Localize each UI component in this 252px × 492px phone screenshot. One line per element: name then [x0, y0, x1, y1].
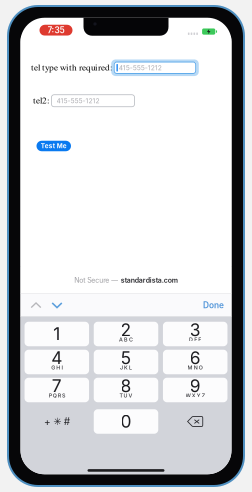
button[interactable]: Next field — [46, 294, 67, 317]
staticText: 7:35 — [47, 25, 64, 35]
button[interactable]: Delete — [163, 409, 227, 434]
staticText: GHI — [51, 364, 62, 371]
staticText: 7 — [52, 375, 62, 396]
staticText: 8 — [120, 375, 131, 396]
staticText: TUV — [119, 392, 133, 399]
staticText: ABC — [119, 336, 133, 343]
staticText: standardista.com — [121, 276, 178, 284]
button[interactable]: Plus, star, pound — [24, 409, 89, 434]
button[interactable]: 4 — [24, 350, 89, 374]
staticText: 5 — [120, 347, 131, 368]
staticText: 415-555-1212 — [56, 97, 99, 105]
button[interactable]: 2 — [94, 322, 158, 346]
staticText: Done — [203, 300, 224, 310]
staticText: 4 — [51, 347, 62, 368]
staticText: tel type with required: — [31, 63, 112, 72]
staticText: Test Me — [41, 142, 67, 150]
button[interactable]: 5 — [94, 350, 158, 374]
button[interactable]: 7 — [24, 378, 89, 402]
staticText: 415-555-1212 — [119, 64, 162, 72]
staticText: 0 — [120, 411, 131, 432]
button[interactable]: 9 — [163, 378, 227, 402]
button[interactable]: 8 — [94, 378, 158, 402]
button[interactable]: Previous field — [25, 294, 46, 317]
button[interactable]: Test Me — [36, 141, 71, 151]
staticText: ✳ — [53, 416, 61, 427]
staticText: JKL — [120, 364, 132, 371]
button[interactable]: Done — [198, 294, 228, 317]
staticText: 1 — [53, 323, 60, 344]
staticText: Not Secure — — [74, 276, 118, 284]
button[interactable]: 1 — [24, 322, 89, 346]
staticText: MNO — [188, 364, 203, 371]
staticText: 9 — [190, 375, 201, 396]
staticText: # — [64, 415, 70, 428]
staticText: 6 — [190, 347, 201, 368]
button[interactable]: 6 — [163, 350, 227, 374]
staticText: DEF — [189, 336, 201, 343]
staticText: WXYZ — [186, 392, 205, 399]
staticText: tel2: — [33, 96, 49, 105]
button[interactable]: 0 — [94, 409, 158, 434]
staticText: 2 — [120, 319, 131, 340]
staticText: 3 — [190, 319, 201, 340]
button[interactable]: 3 — [163, 322, 227, 346]
staticText: + — [44, 415, 51, 428]
staticText: PQRS — [49, 392, 65, 399]
